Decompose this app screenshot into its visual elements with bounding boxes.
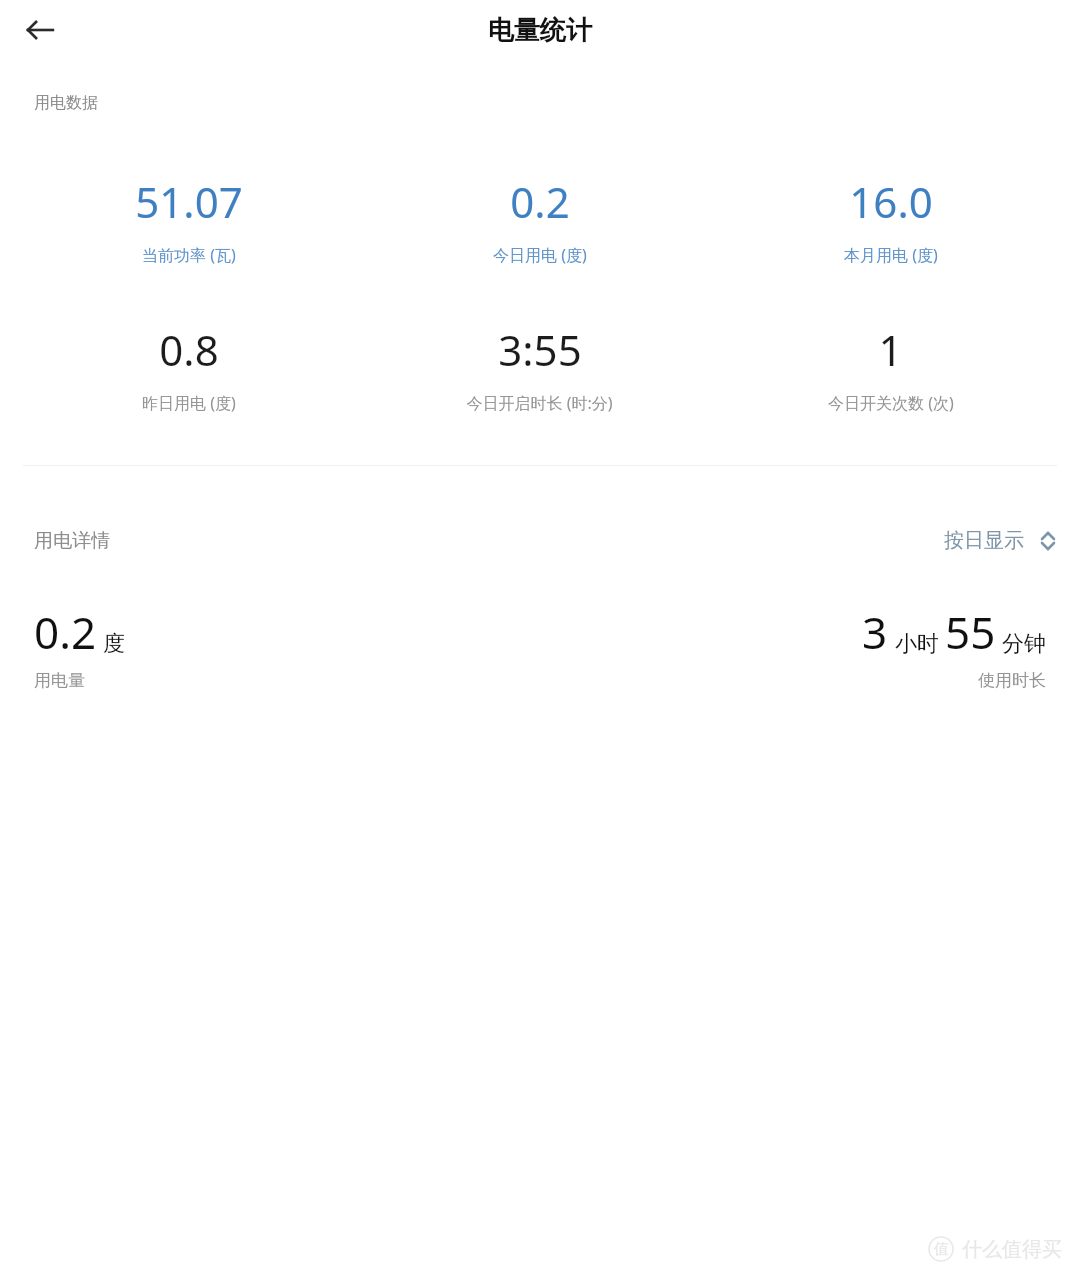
- button[interactable]: 0.8: [14, 321, 364, 414]
- staticText: 用电量: [34, 670, 85, 691]
- staticText: 今日开启时长 (时:分): [466, 392, 613, 414]
- staticText: 0.2: [34, 602, 97, 662]
- button[interactable]: Back: [16, 6, 64, 54]
- staticText: 电量统计: [488, 14, 592, 47]
- button[interactable]: 51.07: [14, 173, 364, 266]
- button[interactable]: 16.0: [715, 173, 1066, 266]
- button[interactable]: 按日显示: [944, 528, 1058, 553]
- staticText: 小时: [895, 630, 939, 658]
- staticText: 按日显示: [944, 528, 1024, 553]
- staticText: 当前功率 (瓦): [142, 244, 236, 266]
- staticText: 用电详情: [34, 529, 110, 553]
- staticText: 今日开关次数 (次): [828, 392, 954, 414]
- staticText: 使用时长: [978, 670, 1046, 691]
- staticText: 值: [934, 1240, 949, 1259]
- button[interactable]: 3:55: [364, 321, 715, 414]
- staticText: 分钟: [1002, 630, 1046, 658]
- staticText: 0.8: [159, 321, 219, 378]
- staticText: 1: [878, 321, 903, 378]
- button[interactable]: 3: [862, 602, 1046, 691]
- staticText: 16.0: [849, 173, 933, 230]
- button[interactable]: 0.2: [364, 173, 715, 266]
- staticText: 什么值得买: [962, 1237, 1062, 1262]
- staticText: 3: [862, 602, 888, 662]
- staticText: 昨日用电 (度): [142, 392, 236, 414]
- staticText: 3:55: [498, 321, 582, 378]
- button[interactable]: 0.2: [34, 602, 125, 691]
- staticText: 度: [103, 630, 125, 658]
- button[interactable]: 1: [715, 321, 1066, 414]
- staticText: 今日用电 (度): [493, 244, 587, 266]
- staticText: 55: [945, 602, 996, 662]
- staticText: 0.2: [510, 173, 570, 230]
- staticText: 用电数据: [34, 93, 98, 113]
- staticText: 51.07: [135, 173, 243, 230]
- staticText: 本月用电 (度): [844, 244, 938, 266]
